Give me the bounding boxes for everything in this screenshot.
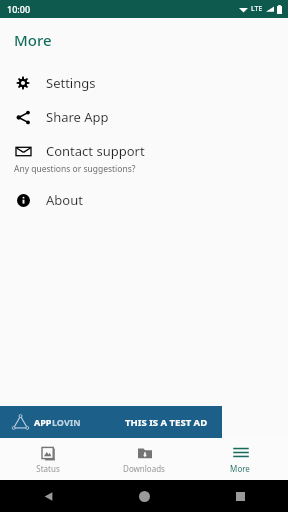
staticText: More [14, 30, 52, 50]
button[interactable]: Home [96, 480, 192, 512]
button[interactable]: Back [0, 480, 96, 512]
staticText: Settings [46, 74, 96, 92]
staticText: Share App [46, 108, 109, 126]
button[interactable]: Downloads [96, 438, 192, 480]
staticText: About [46, 191, 83, 209]
staticText: Any questions or suggestions? [14, 163, 136, 175]
button[interactable]: Recents [192, 480, 288, 512]
button[interactable]: More [192, 438, 288, 480]
button[interactable]: Settings [0, 66, 288, 100]
staticText: 10:00 [7, 3, 31, 15]
staticText: Downloads [123, 463, 165, 474]
button[interactable]: Status [0, 438, 96, 480]
staticText: Status [36, 463, 60, 474]
button[interactable]: Test ad from AppLovin [0, 406, 222, 438]
staticText: Contact support [46, 142, 145, 160]
button[interactable]: About [0, 183, 288, 217]
staticText: APP [34, 416, 52, 428]
button[interactable]: Share App [0, 100, 288, 134]
staticText: LTE [251, 4, 263, 14]
staticText: LOVIN [52, 416, 81, 428]
staticText: THIS IS A TEST AD [125, 416, 208, 429]
staticText: More [230, 463, 250, 474]
button[interactable]: Contact support [0, 134, 288, 183]
